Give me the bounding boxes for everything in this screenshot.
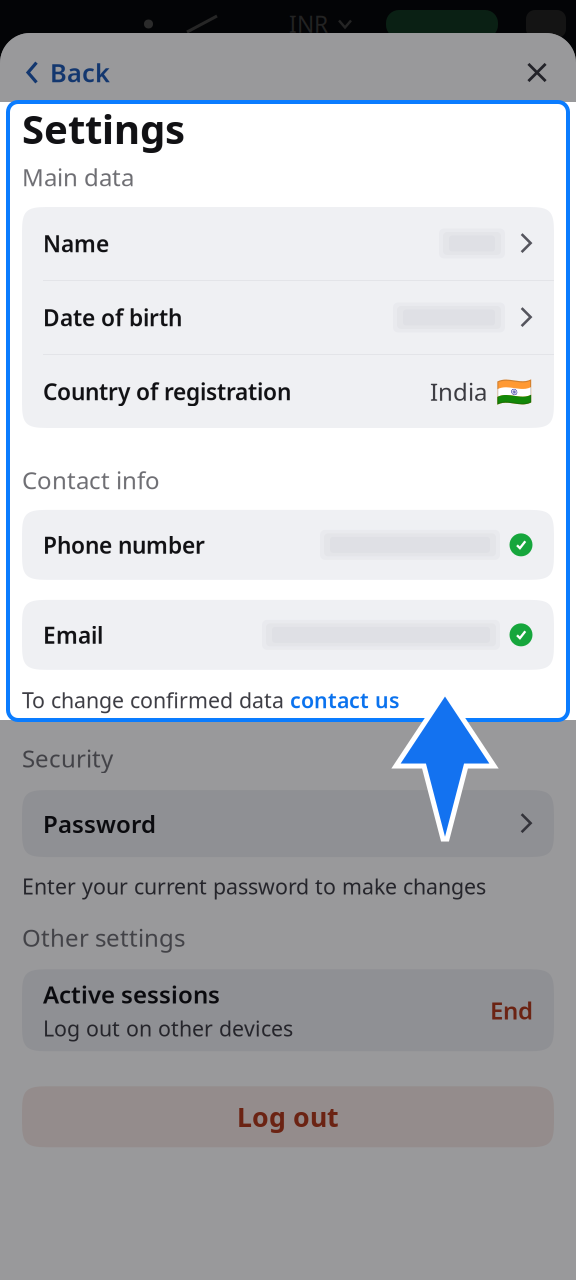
button[interactable]: Log out	[22, 1086, 554, 1147]
staticText: Other settings	[22, 921, 185, 953]
button[interactable]: contact us	[290, 686, 400, 714]
staticText: Phone number	[43, 530, 205, 560]
staticText: To change confirmed data	[22, 686, 290, 714]
staticText: contact us	[290, 686, 400, 714]
button[interactable]: Email	[22, 600, 554, 670]
button[interactable]: Phone number	[22, 510, 554, 580]
staticText: Back	[50, 56, 110, 89]
staticText: Date of birth	[43, 302, 182, 332]
button[interactable]: Active sessions	[22, 969, 554, 1051]
staticText: 🇮🇳	[496, 375, 533, 408]
staticText: Main data	[22, 161, 134, 193]
staticText: Enter your current password to make chan…	[22, 872, 486, 900]
button[interactable]: Close	[511, 33, 576, 102]
staticText: Security	[22, 742, 113, 774]
staticText: End	[490, 994, 533, 1026]
staticText: Log out	[237, 1099, 339, 1134]
staticText: Log out on other devices	[43, 1014, 293, 1042]
staticText: Active sessions	[43, 978, 220, 1010]
staticText: INR	[289, 9, 328, 39]
staticText: India	[430, 376, 487, 407]
staticText: Name	[43, 228, 109, 258]
button[interactable]: Name	[22, 207, 554, 280]
staticText: Country of registration	[43, 376, 291, 406]
staticText: Settings	[22, 102, 185, 155]
staticText: Email	[43, 620, 103, 650]
staticText: Contact info	[22, 464, 160, 496]
staticText: Password	[43, 808, 156, 839]
button[interactable]: Back	[0, 33, 126, 102]
button[interactable]: Date of birth	[22, 281, 554, 354]
button[interactable]: Password	[22, 790, 554, 857]
button[interactable]: Country of registration	[22, 355, 554, 428]
